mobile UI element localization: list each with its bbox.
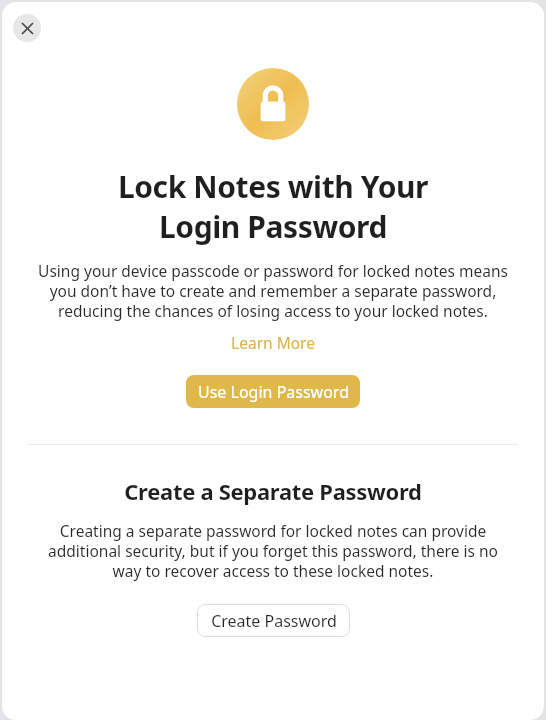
- button[interactable]: Use Login Password: [186, 375, 360, 408]
- button[interactable]: Learn More: [225, 330, 321, 355]
- staticText: Create Password: [211, 610, 337, 632]
- staticText: Use Login Password: [198, 381, 349, 403]
- button[interactable]: Close: [13, 14, 41, 42]
- staticText: Creating a separate password for locked …: [34, 520, 512, 581]
- staticText: Using your device passcode or password f…: [34, 260, 512, 321]
- button[interactable]: Create Password: [197, 604, 350, 637]
- staticText: Learn More: [231, 332, 315, 353]
- staticText: Lock Notes with Your Login Password: [32, 166, 514, 247]
- staticText: Create a Separate Password: [26, 476, 520, 506]
